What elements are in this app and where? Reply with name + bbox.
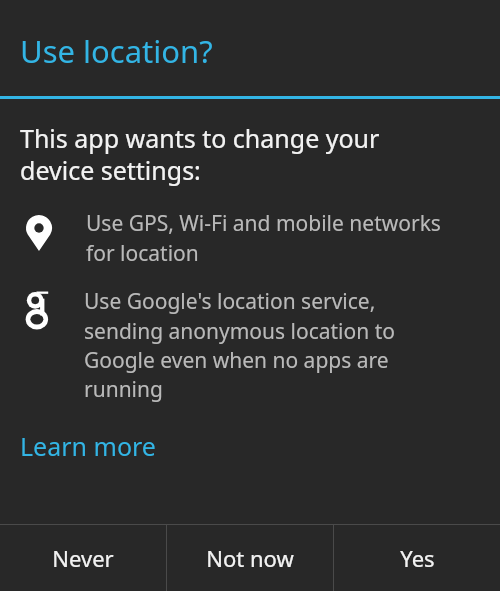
staticText: Never: [52, 543, 114, 573]
button[interactable]: Yes: [334, 525, 500, 591]
button[interactable]: Not now: [167, 525, 333, 591]
staticText: Not now: [206, 543, 294, 573]
staticText: Use Google's location service, sending a…: [84, 287, 395, 403]
button[interactable]: Learn more: [0, 425, 176, 471]
staticText: Use location?: [20, 30, 213, 72]
staticText: This app wants to change your device set…: [20, 121, 380, 187]
staticText: Use GPS, Wi-Fi and mobile networks for l…: [86, 209, 441, 267]
staticText: Learn more: [20, 429, 156, 463]
button[interactable]: Never: [0, 525, 166, 591]
staticText: Yes: [400, 543, 435, 573]
